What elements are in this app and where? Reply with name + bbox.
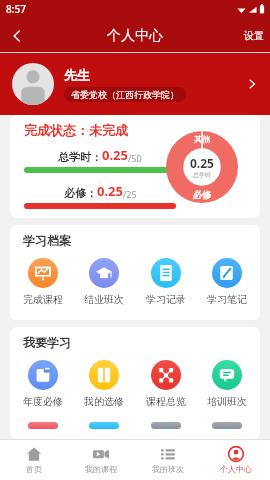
staticText: 学习档案 bbox=[23, 233, 71, 248]
button[interactable]: Shortcut bbox=[137, 420, 195, 431]
staticText: /50 bbox=[128, 152, 142, 164]
staticText: 总学时： bbox=[58, 150, 102, 164]
staticText: 完成状态：未完成 bbox=[24, 122, 176, 138]
staticText: 8:57 bbox=[6, 2, 26, 16]
button[interactable]: 我的班次 bbox=[134, 440, 202, 480]
staticText: /25 bbox=[123, 188, 137, 200]
staticText: 我的班次 bbox=[152, 464, 184, 474]
staticText: 必修 bbox=[193, 189, 211, 200]
staticText: 学习笔记 bbox=[207, 293, 247, 306]
staticText: 先生 bbox=[64, 67, 90, 83]
staticText: 0.25 bbox=[190, 155, 214, 171]
staticText: 个人中心 bbox=[107, 27, 163, 45]
button[interactable]: 年度必修 bbox=[14, 358, 72, 410]
staticText: 培训班次 bbox=[207, 395, 247, 408]
staticText: 总学时 bbox=[193, 171, 211, 179]
staticText: 首页 bbox=[26, 464, 42, 474]
button[interactable]: 培训班次 bbox=[198, 358, 256, 410]
staticText: 0.25 bbox=[102, 146, 128, 164]
staticText: 我要学习 bbox=[23, 335, 71, 350]
button[interactable]: 个人中心 bbox=[202, 440, 270, 480]
button[interactable]: 学习笔记 bbox=[198, 256, 256, 308]
staticText: 课程总览 bbox=[146, 395, 186, 408]
button[interactable]: 我的选修 bbox=[75, 358, 133, 410]
button[interactable]: 先生 bbox=[0, 53, 270, 115]
button[interactable]: Back bbox=[0, 19, 34, 53]
button[interactable]: 我的课程 bbox=[67, 440, 134, 480]
button[interactable]: 课程总览 bbox=[137, 358, 195, 410]
staticText: 学习记录 bbox=[146, 293, 186, 306]
staticText: 年度必修 bbox=[23, 395, 63, 408]
button[interactable]: 首页 bbox=[0, 440, 67, 480]
button[interactable]: Shortcut bbox=[75, 420, 133, 431]
staticText: 结业班次 bbox=[84, 293, 124, 306]
staticText: 设置 bbox=[244, 29, 264, 42]
button[interactable]: Shortcut bbox=[14, 420, 72, 431]
button[interactable]: 学习记录 bbox=[137, 256, 195, 308]
button[interactable]: 设置 bbox=[244, 29, 264, 42]
button[interactable]: 完成课程 bbox=[14, 256, 72, 308]
staticText: 完成课程 bbox=[23, 293, 63, 306]
staticText: 省委党校（江西行政学院） bbox=[71, 89, 179, 100]
staticText: 我的课程 bbox=[85, 464, 117, 474]
staticText: 我的选修 bbox=[84, 395, 124, 408]
staticText: 其他 bbox=[194, 134, 210, 144]
staticText: 0.25 bbox=[97, 182, 123, 200]
button[interactable]: Shortcut bbox=[198, 420, 256, 431]
staticText: 必修： bbox=[64, 186, 97, 200]
button[interactable]: 结业班次 bbox=[75, 256, 133, 308]
staticText: 个人中心 bbox=[220, 464, 252, 474]
